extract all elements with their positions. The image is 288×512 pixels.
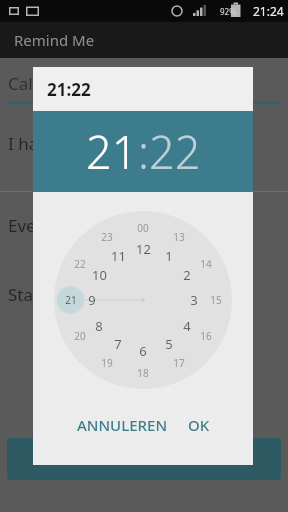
staticText: Call mom <box>8 72 84 95</box>
button[interactable]: 19 <box>97 353 117 373</box>
staticText: : <box>138 121 149 182</box>
staticText: 21 <box>86 121 138 182</box>
staticText: 5 <box>165 335 173 353</box>
button[interactable]: 6 <box>133 341 153 361</box>
button[interactable]: 20 <box>70 326 90 346</box>
button[interactable]: 10 <box>89 265 109 285</box>
button[interactable]: 12 <box>133 239 153 259</box>
staticText: 21:22 <box>47 78 91 101</box>
button[interactable]: 11 <box>108 246 128 266</box>
staticText: 92% <box>220 6 236 17</box>
staticText: 17 <box>173 356 185 370</box>
staticText: 2 <box>183 266 191 284</box>
staticText: 4 <box>183 317 191 335</box>
button[interactable]: 23 <box>97 227 117 247</box>
staticText: 20 <box>74 329 86 343</box>
button[interactable]: 9 <box>82 290 102 310</box>
staticText: 18 <box>137 366 149 380</box>
button[interactable]: 7 <box>108 334 128 354</box>
button[interactable]: 3 <box>184 290 204 310</box>
staticText: Remind Me <box>14 30 95 50</box>
button[interactable]: 13 <box>169 227 189 247</box>
staticText: 10 <box>92 266 107 284</box>
button[interactable]: 00 <box>133 218 153 238</box>
button[interactable]: 14 <box>196 254 216 274</box>
staticText: SET REMINDER <box>98 450 191 468</box>
button[interactable]: SET REMINDER <box>7 438 281 480</box>
staticText: Every day <box>8 214 85 237</box>
button[interactable]: ANNULEREN <box>71 408 174 442</box>
staticText: 23 <box>101 230 113 244</box>
staticText: 12 <box>136 240 151 258</box>
staticText: 21 <box>65 293 77 307</box>
staticText: 22 <box>74 257 86 271</box>
staticText: ANNULEREN <box>77 415 168 435</box>
button[interactable]: 1 <box>159 246 179 266</box>
staticText: 3 <box>190 291 198 309</box>
button[interactable]: 2 <box>177 265 197 285</box>
button[interactable]: 5 <box>159 334 179 354</box>
staticText: 1 <box>165 247 173 265</box>
button[interactable]: 8 <box>89 316 109 336</box>
button[interactable]: 17 <box>169 353 189 373</box>
button[interactable]: 22 <box>149 121 201 182</box>
button[interactable]: Remind Me <box>0 22 288 58</box>
staticText: 15 <box>210 293 222 307</box>
staticText: 14 <box>200 257 212 271</box>
button[interactable]: 4 <box>177 316 197 336</box>
staticText: OK <box>188 415 210 435</box>
button[interactable]: 18 <box>133 363 153 383</box>
staticText: 16 <box>200 329 212 343</box>
staticText: 13 <box>173 230 185 244</box>
button[interactable]: 22 <box>70 254 90 274</box>
button[interactable]: 21 <box>61 290 81 310</box>
button[interactable]: 15 <box>206 290 226 310</box>
staticText: 7 <box>114 335 122 353</box>
staticText: 19 <box>101 356 113 370</box>
button[interactable]: 21 <box>86 121 138 182</box>
button[interactable]: 16 <box>196 326 216 346</box>
button[interactable]: OK <box>182 408 216 442</box>
staticText: 11 <box>111 247 126 265</box>
staticText: 8 <box>95 317 103 335</box>
staticText: 21:24 <box>253 3 284 19</box>
staticText: Start <box>8 283 47 306</box>
staticText: 9 <box>88 291 96 309</box>
staticText: 00 <box>137 221 149 235</box>
staticText: 6 <box>139 342 147 360</box>
staticText: 22 <box>149 121 201 182</box>
staticText: I have to <box>8 132 78 155</box>
